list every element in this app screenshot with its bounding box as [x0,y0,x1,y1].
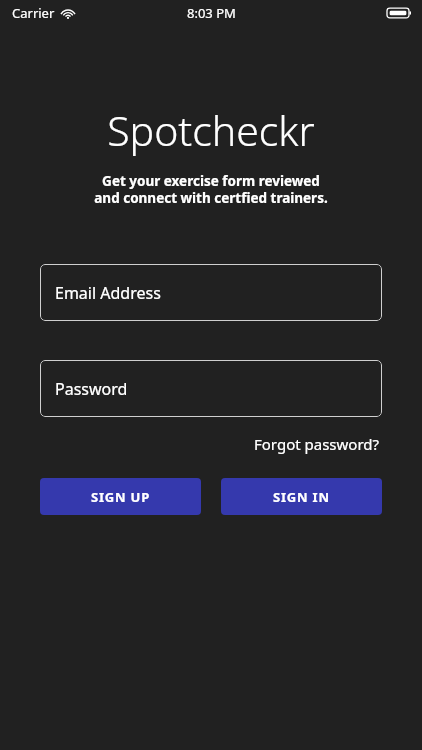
button[interactable]: Password [40,360,382,417]
button[interactable]: SIGN IN [221,478,382,515]
staticText: Get your exercise form reviewed and conn… [0,172,422,207]
other: Battery full [387,7,412,19]
button[interactable]: SIGN UP [40,478,201,515]
staticText: SIGN UP [91,488,151,506]
other: Wi-Fi signal [61,8,75,19]
staticText: Forgot password? [254,434,380,454]
button[interactable]: Email Address [40,264,382,321]
staticText: Carrier [12,4,55,22]
staticText: SIGN IN [273,488,330,506]
staticText: 8:03 PM [187,4,236,22]
button[interactable]: Forgot password? [252,430,382,458]
staticText: Spotcheckr [0,102,422,158]
staticText: Email Address [55,282,161,304]
staticText: Password [55,378,128,400]
